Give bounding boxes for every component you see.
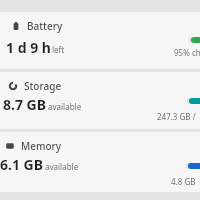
- staticText: 1 d 9 h: [6, 38, 51, 57]
- staticText: left: [52, 44, 65, 55]
- staticText: available: [48, 101, 82, 112]
- button[interactable]: Memory: [0, 132, 200, 192]
- staticText: 95% ch: [174, 47, 200, 58]
- staticText: 8.7 GB: [3, 95, 47, 114]
- staticText: 6.1 GB: [0, 155, 44, 174]
- staticText: Storage: [24, 79, 62, 93]
- staticText: Memory: [21, 139, 62, 153]
- staticText: 4.8 GB: [171, 176, 196, 187]
- staticText: Battery: [27, 19, 63, 33]
- staticText: 247.3 GB /: [157, 111, 196, 122]
- button[interactable]: Battery: [0, 12, 200, 69]
- button[interactable]: Storage: [0, 72, 200, 129]
- staticText: available: [45, 161, 79, 172]
